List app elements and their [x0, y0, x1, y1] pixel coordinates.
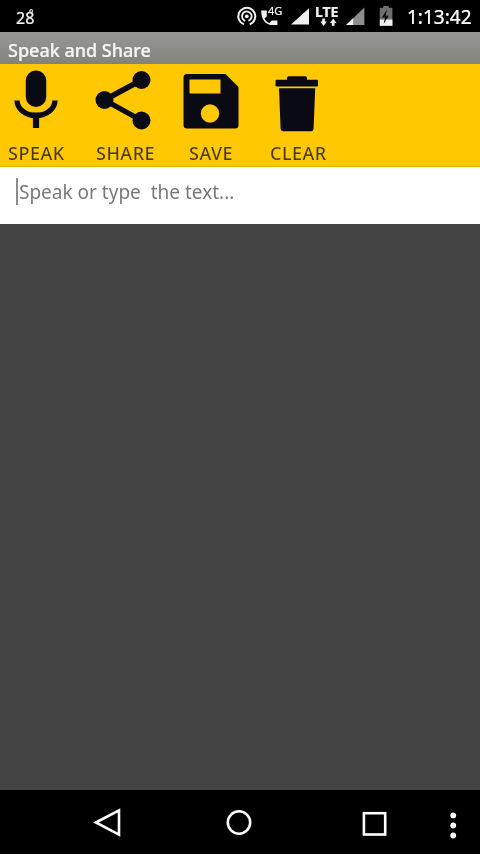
staticText: Speak and Share: [8, 38, 151, 63]
staticText: SHARE: [96, 141, 156, 166]
staticText: Speak or type the text...: [19, 179, 235, 205]
button[interactable]: Speak or type the text...: [0, 167, 480, 224]
staticText: LTE: [315, 2, 339, 21]
button[interactable]: SAVE: [168, 64, 255, 167]
staticText: SAVE: [189, 141, 234, 166]
button[interactable]: More options: [433, 806, 473, 846]
button[interactable]: Back: [83, 806, 133, 854]
staticText: 28: [16, 7, 35, 29]
staticText: CLEAR: [270, 141, 327, 166]
button[interactable]: SHARE: [82, 64, 169, 167]
staticText: °: [29, 6, 34, 20]
staticText: 4G: [268, 3, 283, 18]
button[interactable]: CLEAR: [255, 64, 342, 167]
button[interactable]: Speak and Share: [0, 32, 480, 64]
button[interactable]: Home: [214, 806, 264, 854]
staticText: SPEAK: [8, 141, 65, 166]
staticText: 1:13:42: [407, 4, 472, 30]
button[interactable]: SPEAK: [0, 64, 80, 167]
button[interactable]: Recent apps: [348, 807, 398, 854]
